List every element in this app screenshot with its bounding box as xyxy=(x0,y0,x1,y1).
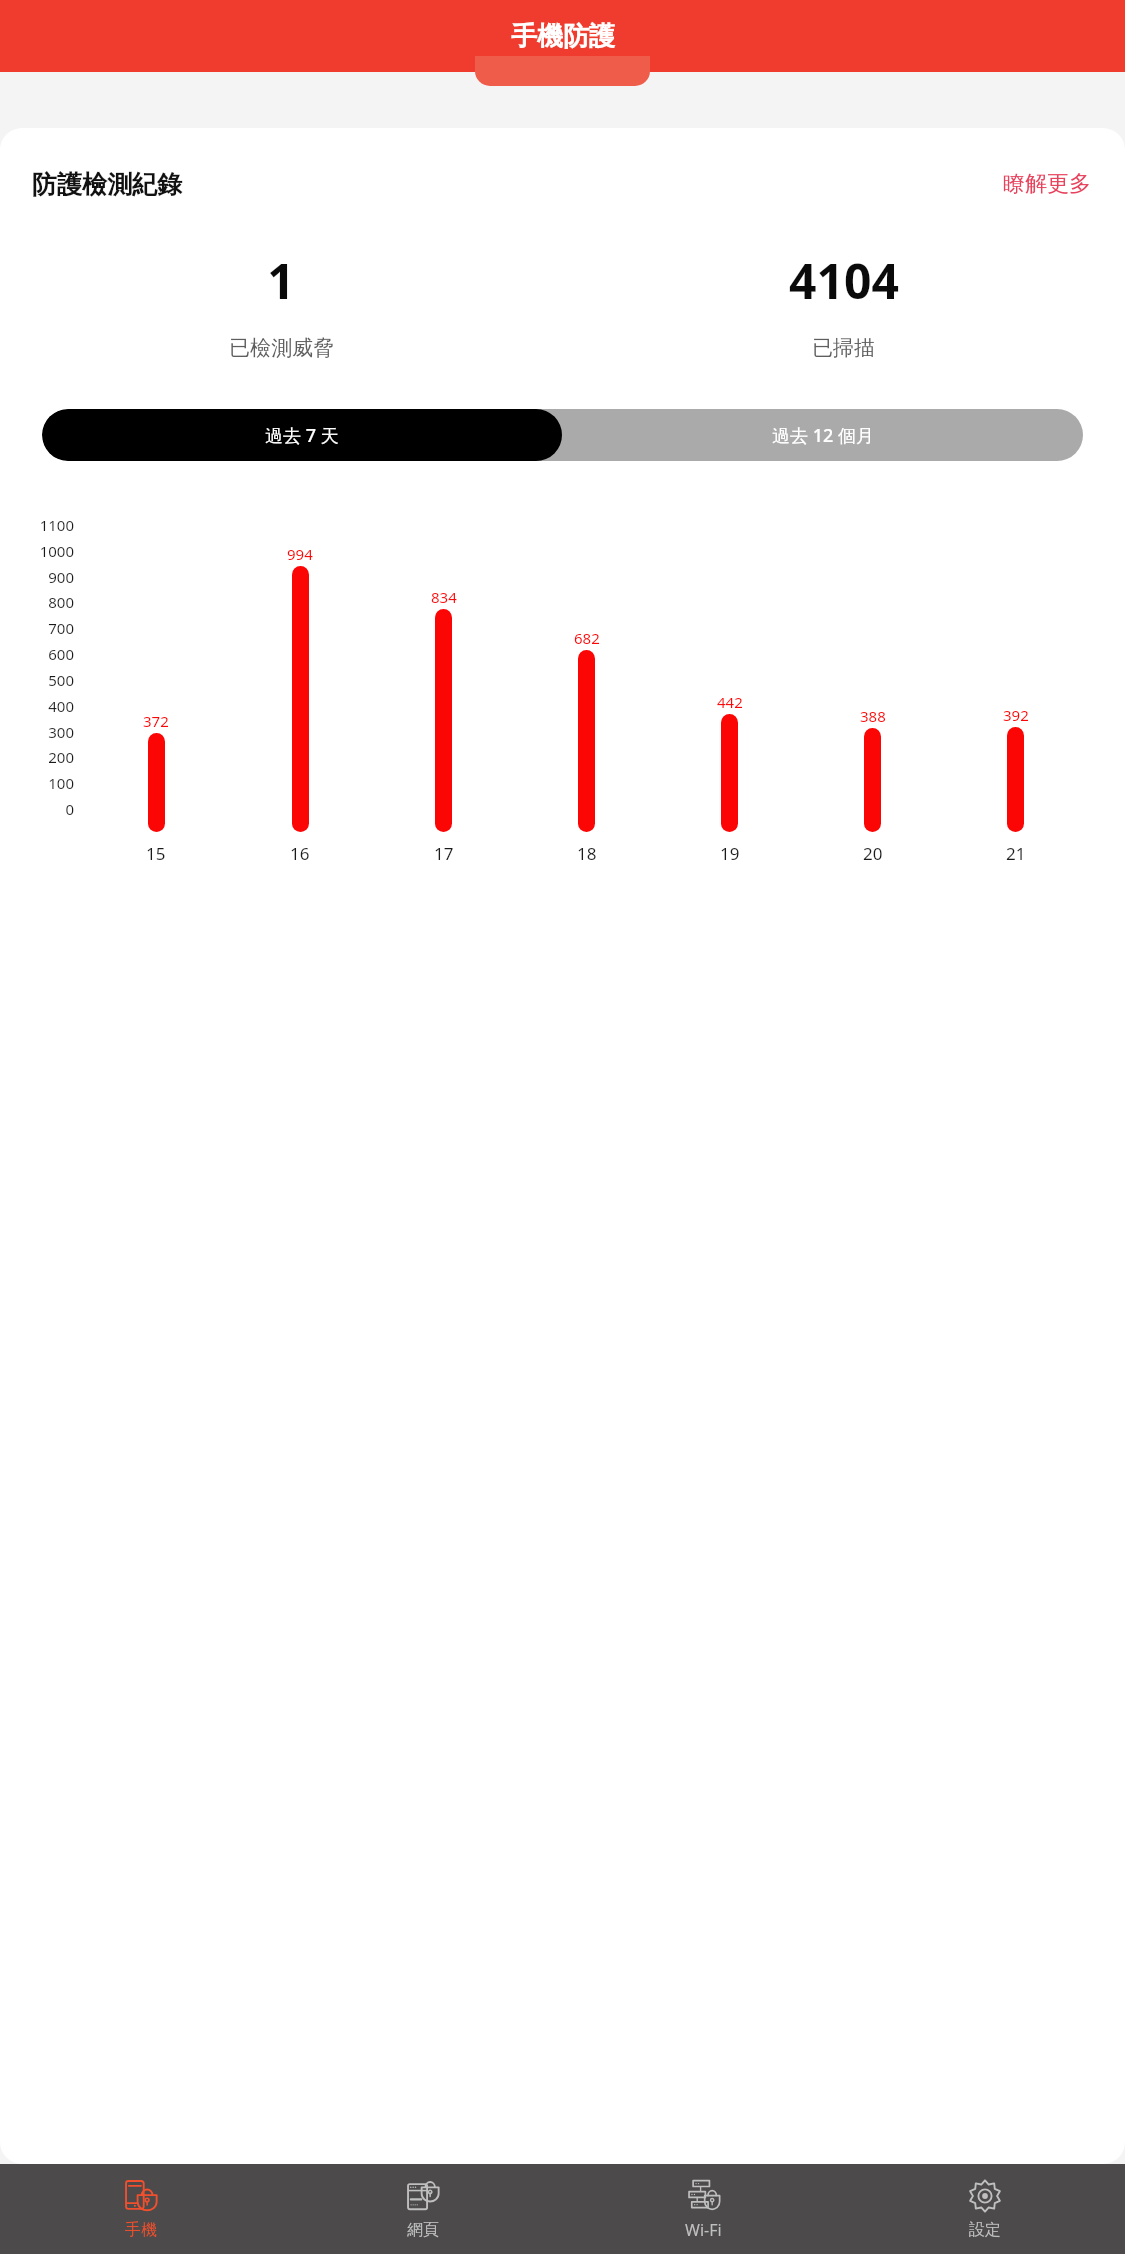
staticText: Wi-Fi xyxy=(685,2219,722,2241)
staticText: 600 xyxy=(48,644,74,664)
staticText: 1100 xyxy=(39,515,74,535)
staticText: 16 xyxy=(290,842,310,865)
staticText: 防護檢測紀錄 xyxy=(32,169,182,200)
staticText: 19 xyxy=(720,842,740,865)
staticText: 100 xyxy=(48,773,74,793)
staticText: 442 xyxy=(717,692,743,712)
button[interactable]: 過去 7 天 xyxy=(42,409,562,461)
staticText: 過去 7 天 xyxy=(265,423,339,448)
button[interactable]: 手機 xyxy=(0,2164,282,2254)
staticText: 已檢測威脅 xyxy=(229,335,334,361)
staticText: 1 xyxy=(267,248,295,313)
button[interactable]: 過去 12 個月 xyxy=(562,409,1083,461)
staticText: 300 xyxy=(48,722,74,742)
staticText: 1000 xyxy=(39,541,74,561)
staticText: 682 xyxy=(574,628,600,648)
staticText: 834 xyxy=(431,587,457,607)
button[interactable]: 網頁 xyxy=(282,2164,563,2254)
staticText: 17 xyxy=(434,842,454,865)
staticText: 900 xyxy=(48,567,74,587)
button[interactable]: Wi-Fi xyxy=(563,2164,844,2254)
staticText: 400 xyxy=(48,696,74,716)
staticText: 手機 xyxy=(125,2220,157,2240)
staticText: 瞭解更多 xyxy=(1003,170,1091,198)
button[interactable]: 瞭解更多 xyxy=(1001,166,1093,202)
staticText: 800 xyxy=(48,592,74,612)
staticText: 手機防護 xyxy=(511,20,615,53)
staticText: 4104 xyxy=(789,248,899,313)
staticText: 0 xyxy=(65,799,74,819)
staticText: 過去 12 個月 xyxy=(772,423,874,448)
staticText: 200 xyxy=(48,747,74,767)
staticText: 已掃描 xyxy=(812,335,875,361)
staticText: 700 xyxy=(48,618,74,638)
staticText: 994 xyxy=(287,544,313,564)
staticText: 15 xyxy=(146,842,166,865)
button[interactable]: 設定 xyxy=(844,2164,1125,2254)
staticText: 500 xyxy=(48,670,74,690)
staticText: 18 xyxy=(577,842,597,865)
staticText: 388 xyxy=(860,706,886,726)
staticText: 20 xyxy=(863,842,883,865)
staticText: 392 xyxy=(1003,705,1029,725)
staticText: 網頁 xyxy=(407,2220,439,2240)
staticText: 設定 xyxy=(969,2220,1001,2240)
staticText: 372 xyxy=(143,711,169,731)
staticText: 21 xyxy=(1006,842,1026,865)
